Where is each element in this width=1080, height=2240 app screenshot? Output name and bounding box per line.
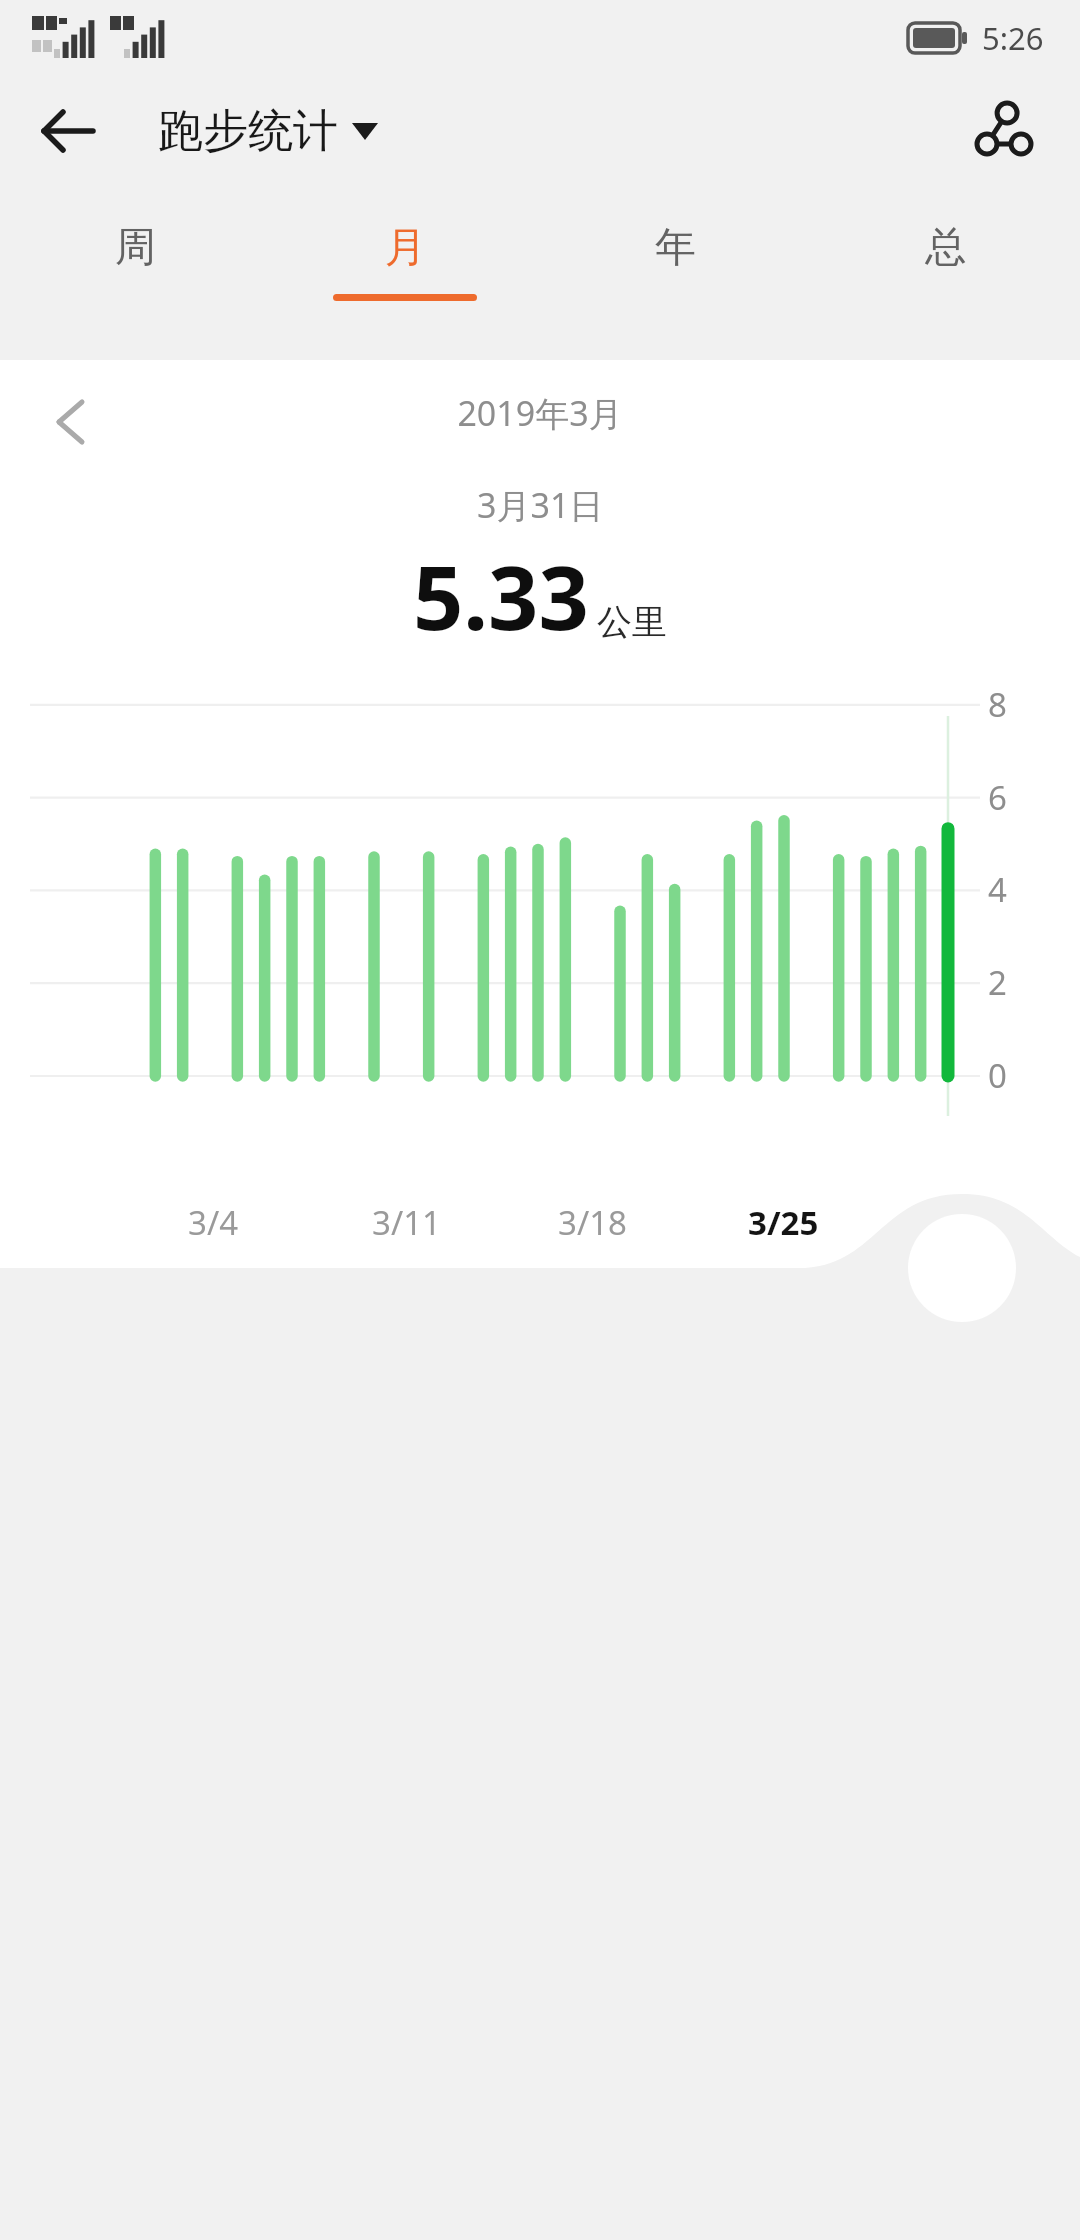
- staticText: 月: [385, 222, 426, 274]
- staticText: 3/4: [188, 1200, 239, 1245]
- staticText: 8: [988, 682, 1007, 727]
- button[interactable]: 周: [0, 186, 270, 360]
- button[interactable]: Back: [20, 83, 116, 179]
- button[interactable]: Previous month: [30, 382, 110, 462]
- staticText: 跑步统计: [158, 103, 338, 160]
- staticText: 5:26: [982, 17, 1044, 59]
- staticText: 4: [988, 867, 1007, 912]
- staticText: 6: [988, 775, 1007, 820]
- staticText: 3/25: [748, 1200, 819, 1245]
- staticText: 总: [925, 222, 966, 274]
- staticText: 3月31日: [477, 482, 604, 528]
- button[interactable]: Share record: [908, 1214, 1016, 1322]
- staticText: 3/11: [372, 1200, 441, 1245]
- staticText: 周: [115, 222, 156, 274]
- staticText: 公里: [597, 600, 667, 644]
- button[interactable]: 总: [810, 186, 1080, 360]
- staticText: 年: [655, 222, 696, 274]
- staticText: 2019年3月: [0, 390, 1080, 436]
- button[interactable]: Share: [956, 83, 1052, 179]
- button[interactable]: 跑步统计: [158, 103, 378, 160]
- button[interactable]: 月: [270, 186, 540, 360]
- staticText: 3/18: [558, 1200, 627, 1245]
- staticText: 2: [988, 960, 1007, 1005]
- button[interactable]: 年: [540, 186, 810, 360]
- staticText: 5.33: [413, 536, 589, 656]
- staticText: 0: [988, 1053, 1007, 1098]
